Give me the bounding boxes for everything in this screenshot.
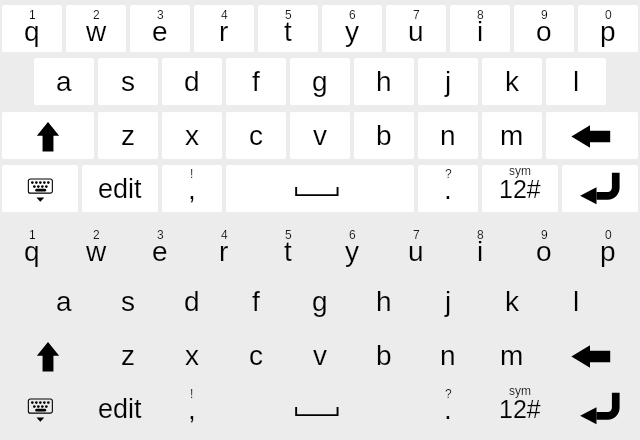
button[interactable]: g — [290, 58, 350, 105]
staticText: 8 — [477, 228, 484, 241]
button[interactable]: d — [162, 278, 222, 325]
button[interactable]: 6 — [322, 225, 382, 272]
staticText: 3 — [157, 228, 164, 241]
button[interactable]: ? — [418, 165, 478, 212]
staticText: 0 — [605, 228, 612, 241]
button[interactable]: 8 — [450, 5, 510, 52]
button[interactable]: Hide keyboard — [2, 385, 78, 432]
button[interactable]: c — [226, 112, 286, 159]
button[interactable]: Space — [226, 165, 414, 212]
button[interactable]: 5 — [258, 225, 318, 272]
button[interactable]: h — [354, 278, 414, 325]
staticText: v — [313, 120, 327, 151]
button[interactable]: x — [162, 332, 222, 379]
button[interactable]: 0 — [578, 5, 638, 52]
button[interactable]: s — [98, 278, 158, 325]
button[interactable]: 2 — [66, 225, 126, 272]
button[interactable]: 7 — [386, 225, 446, 272]
staticText: n — [440, 120, 456, 151]
staticText: . — [444, 394, 452, 425]
button[interactable]: f — [226, 278, 286, 325]
button[interactable]: g — [290, 278, 350, 325]
button[interactable]: sym — [482, 385, 558, 432]
staticText: e — [152, 236, 168, 267]
button[interactable]: 1 — [2, 5, 62, 52]
button[interactable]: ! — [162, 385, 222, 432]
button[interactable]: 9 — [514, 5, 574, 52]
button[interactable]: Backspace — [546, 112, 638, 159]
button[interactable]: ? — [418, 385, 478, 432]
button[interactable]: Shift — [2, 332, 94, 379]
button[interactable]: v — [290, 332, 350, 379]
button[interactable]: Enter — [562, 385, 638, 432]
button[interactable]: Space — [226, 385, 414, 432]
button[interactable]: 3 — [130, 225, 190, 272]
staticText: 5 — [285, 8, 292, 21]
button[interactable]: j — [418, 278, 478, 325]
staticText: 2 — [93, 228, 100, 241]
button[interactable]: sym — [482, 165, 558, 212]
button[interactable]: l — [546, 58, 606, 105]
button[interactable]: edit — [82, 385, 158, 432]
button[interactable]: x — [162, 112, 222, 159]
button[interactable]: 3 — [130, 5, 190, 52]
button[interactable]: 2 — [66, 5, 126, 52]
button[interactable]: m — [482, 112, 542, 159]
staticText: u — [408, 16, 424, 47]
staticText: y — [345, 236, 359, 267]
staticText: a — [56, 286, 72, 317]
staticText: l — [573, 66, 580, 97]
staticText: 7 — [413, 228, 420, 241]
button[interactable]: 1 — [2, 225, 62, 272]
button[interactable]: ! — [162, 165, 222, 212]
button[interactable]: j — [418, 58, 478, 105]
staticText: y — [345, 16, 359, 47]
button[interactable]: 4 — [194, 225, 254, 272]
button[interactable]: Shift — [2, 112, 94, 159]
button[interactable]: 8 — [450, 225, 510, 272]
button[interactable]: c — [226, 332, 286, 379]
button[interactable]: n — [418, 112, 478, 159]
button[interactable]: v — [290, 112, 350, 159]
button[interactable]: 7 — [386, 5, 446, 52]
staticText: c — [249, 120, 263, 151]
button[interactable]: k — [482, 278, 542, 325]
button[interactable]: a — [34, 278, 94, 325]
button[interactable]: n — [418, 332, 478, 379]
button[interactable]: z — [98, 112, 158, 159]
button[interactable]: z — [98, 332, 158, 379]
staticText: m — [500, 120, 524, 151]
button[interactable]: s — [98, 58, 158, 105]
staticText: ? — [445, 167, 452, 180]
staticText: r — [219, 16, 229, 47]
staticText: o — [536, 16, 552, 47]
button[interactable]: f — [226, 58, 286, 105]
staticText: j — [445, 66, 452, 97]
button[interactable]: edit — [82, 165, 158, 212]
button[interactable]: 0 — [578, 225, 638, 272]
button[interactable]: k — [482, 58, 542, 105]
staticText: t — [284, 236, 292, 267]
staticText: t — [284, 16, 292, 47]
button[interactable]: Enter — [562, 165, 638, 212]
staticText: b — [376, 120, 392, 151]
staticText: n — [440, 340, 456, 371]
button[interactable]: 4 — [194, 5, 254, 52]
button[interactable]: h — [354, 58, 414, 105]
button[interactable]: d — [162, 58, 222, 105]
button[interactable]: 5 — [258, 5, 318, 52]
button[interactable]: Backspace — [546, 332, 638, 379]
staticText: 1 — [29, 228, 36, 241]
staticText: z — [121, 340, 135, 371]
button[interactable]: b — [354, 112, 414, 159]
staticText: h — [376, 286, 392, 317]
button[interactable]: Hide keyboard — [2, 165, 78, 212]
button[interactable]: l — [546, 278, 606, 325]
button[interactable]: 9 — [514, 225, 574, 272]
button[interactable]: 6 — [322, 5, 382, 52]
staticText: a — [56, 66, 72, 97]
button[interactable]: b — [354, 332, 414, 379]
button[interactable]: m — [482, 332, 542, 379]
staticText: 12# — [499, 395, 541, 423]
button[interactable]: a — [34, 58, 94, 105]
